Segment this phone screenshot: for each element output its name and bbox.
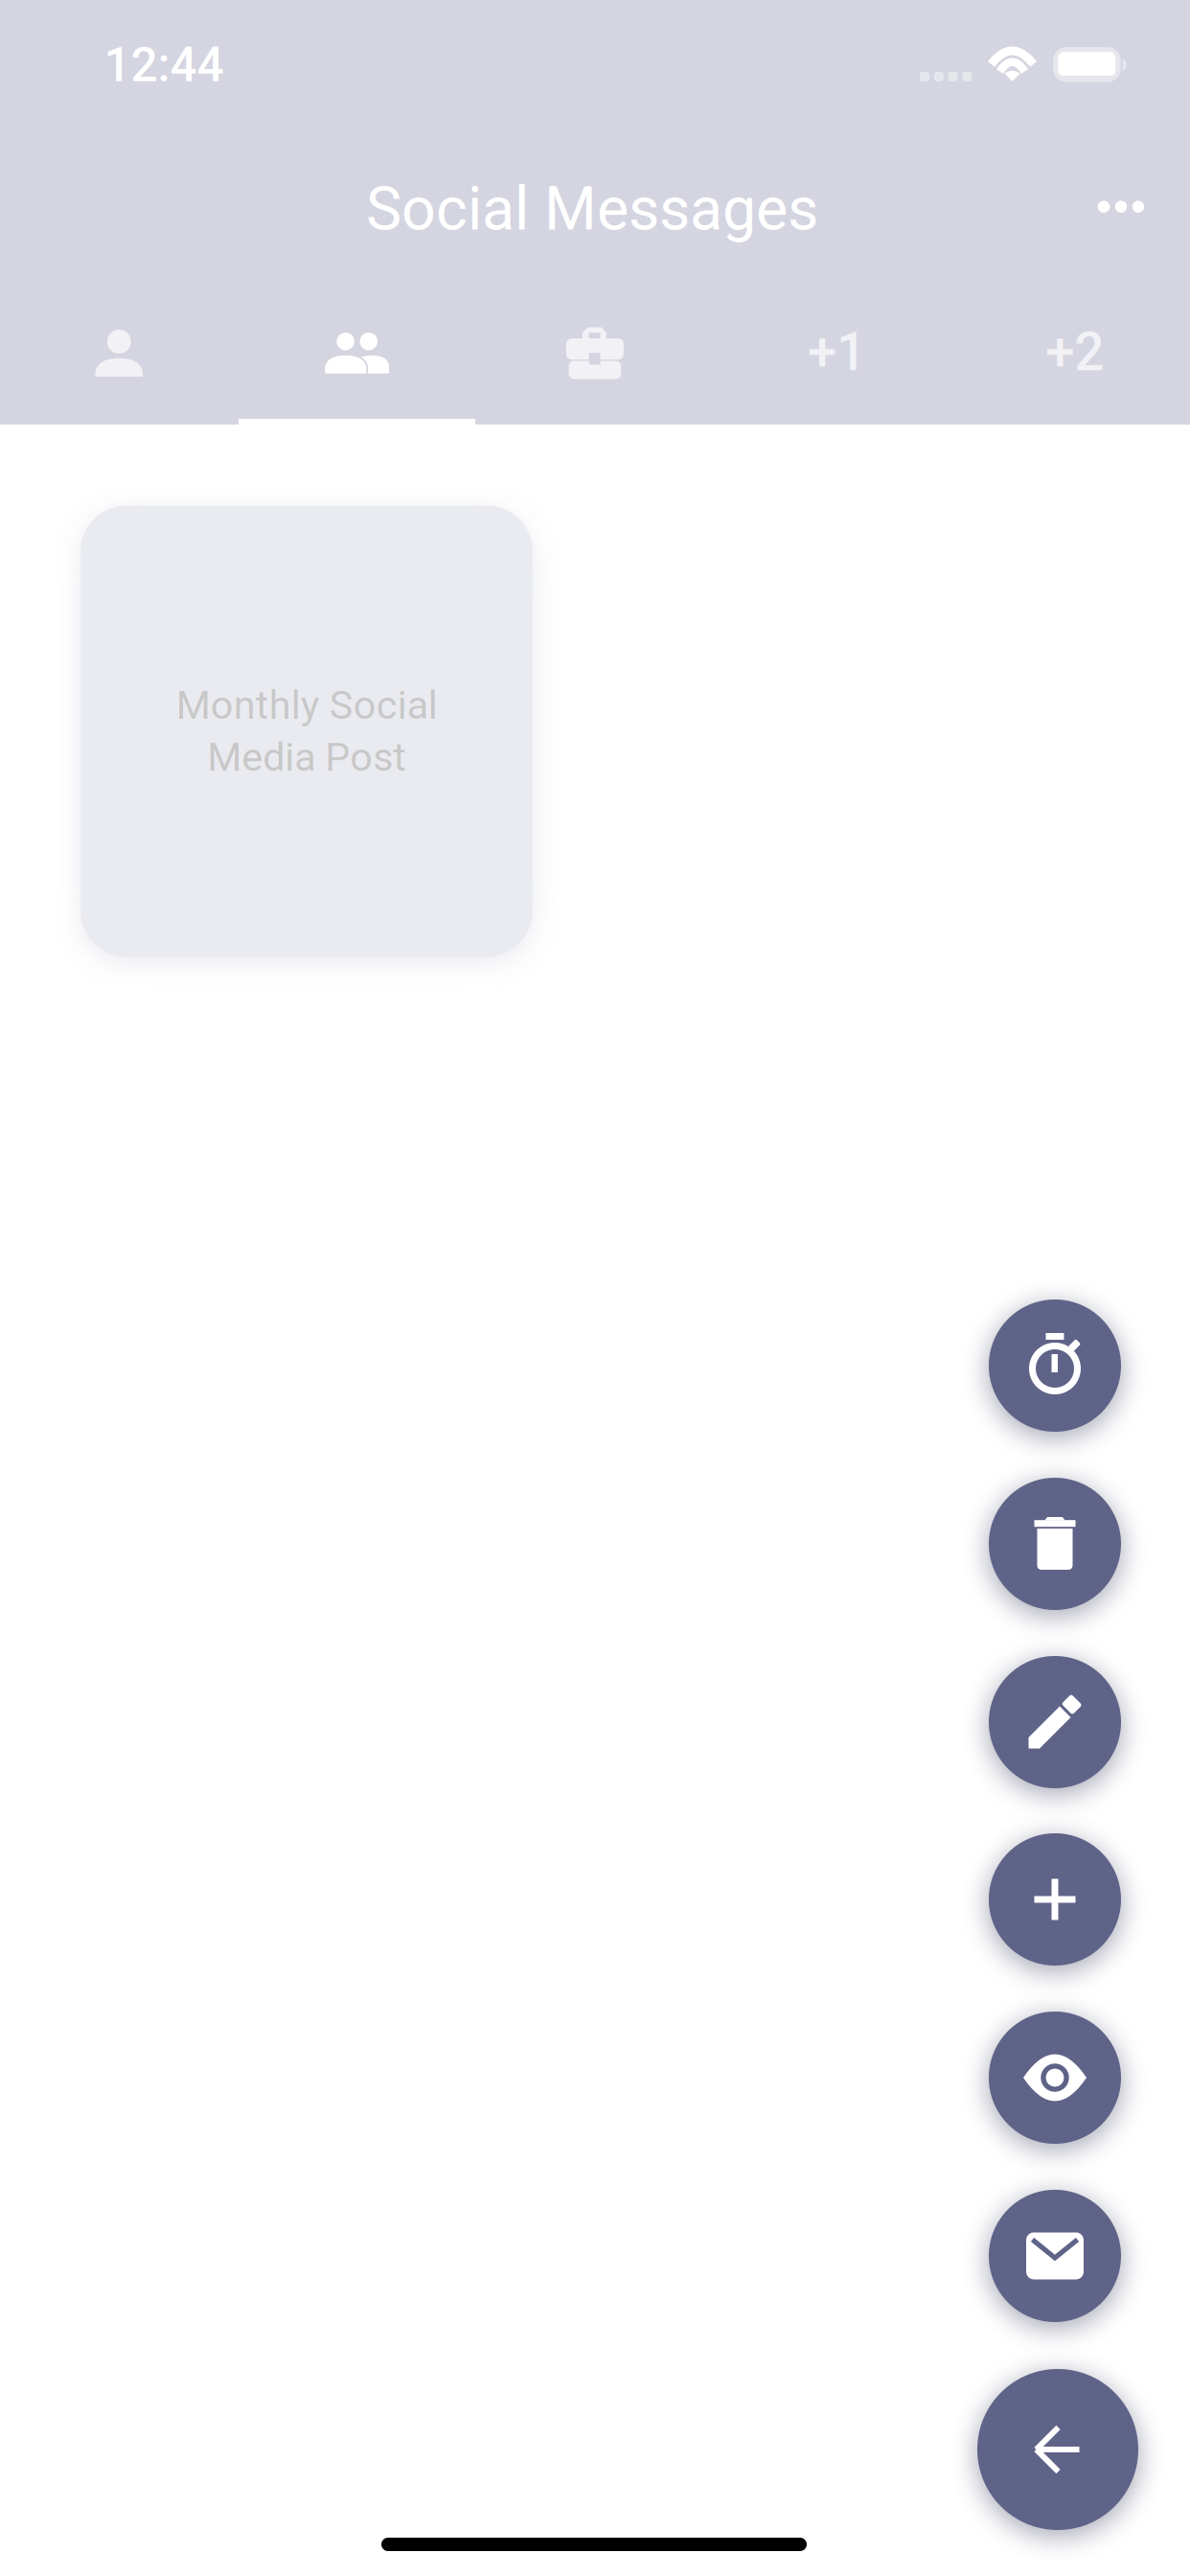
button[interactable]: Business [476, 276, 714, 430]
button[interactable]: Mail [989, 2190, 1121, 2322]
button[interactable]: Preview [989, 2012, 1121, 2144]
staticText: Social Messages [366, 174, 818, 244]
button[interactable]: Delete [989, 1478, 1121, 1610]
staticText: Monthly Social Media Post [176, 682, 437, 781]
staticText: +2 [1046, 322, 1104, 383]
button[interactable]: Add [989, 1833, 1121, 1966]
button[interactable]: Monthly Social Media Post [80, 506, 533, 957]
button[interactable]: Edit [989, 1656, 1121, 1788]
staticText: 12:44 [104, 37, 224, 93]
button[interactable]: Groups [238, 276, 476, 430]
button[interactable]: Timer [989, 1299, 1121, 1432]
button[interactable]: Plus one [714, 276, 952, 430]
staticText: +1 [808, 322, 866, 383]
button[interactable]: More options [1064, 161, 1179, 253]
button[interactable]: Plus two [952, 276, 1190, 430]
button[interactable]: Back [977, 2369, 1138, 2530]
button[interactable]: Individual [0, 276, 238, 430]
